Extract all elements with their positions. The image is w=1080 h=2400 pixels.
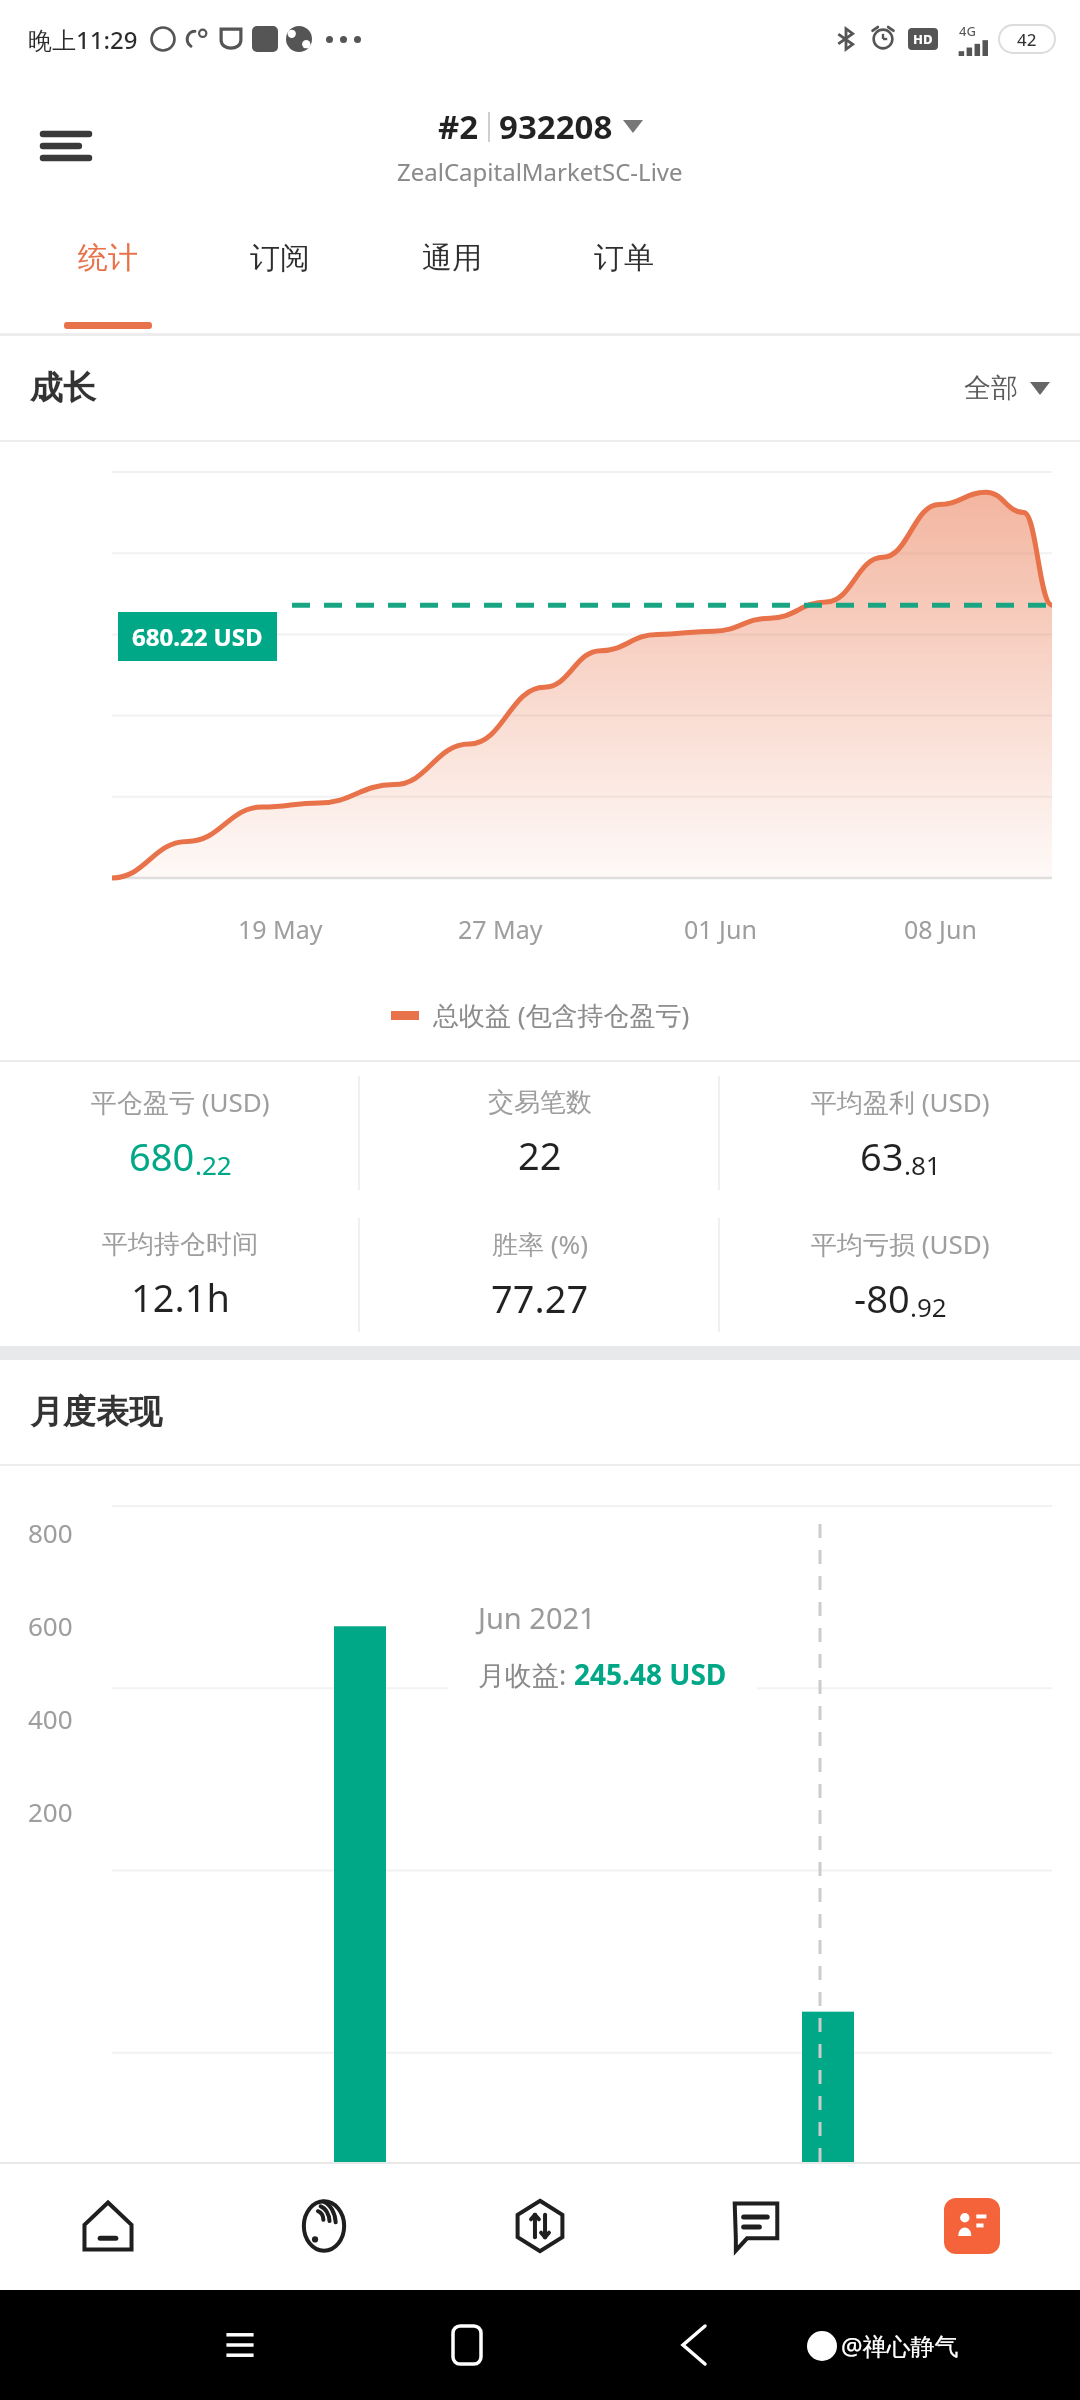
staticText: 680 <box>129 1130 195 1182</box>
staticText: 总收益 (包含持仓盈亏) <box>433 997 690 1033</box>
staticText: 12.1h <box>131 1271 230 1323</box>
staticText: 晚上11:29 <box>28 23 138 56</box>
staticText: 订阅 <box>250 239 310 277</box>
staticText: 27 May <box>458 912 543 946</box>
staticText: 800 <box>28 1515 73 1550</box>
button[interactable]: 订阅 <box>194 213 366 333</box>
staticText: 4G <box>959 22 976 40</box>
staticText: 通用 <box>422 239 482 277</box>
staticText: 订单 <box>594 239 654 277</box>
staticText: 22 <box>518 1129 562 1181</box>
button[interactable]: Menu <box>30 110 102 182</box>
staticText: 77.27 <box>491 1272 589 1324</box>
staticText: 08 Jun <box>904 912 977 946</box>
staticText: 200 <box>28 1794 73 1829</box>
staticText: ZealCapitalMarketSC-Live <box>397 155 683 188</box>
staticText: 全部 <box>964 371 1018 405</box>
staticText: 月收益: <box>478 1656 574 1693</box>
staticText: 245.48 USD <box>574 1655 727 1693</box>
button[interactable]: Home <box>353 2290 580 2400</box>
staticText: Jun 2021 <box>478 1598 596 1637</box>
staticText: 400 <box>28 1701 73 1736</box>
button[interactable]: 全部 <box>964 371 1050 405</box>
button[interactable]: Home <box>0 2162 216 2290</box>
button[interactable]: 订单 <box>538 213 710 333</box>
staticText: 交易笔数 <box>488 1086 592 1119</box>
button[interactable]: Messages <box>648 2162 864 2290</box>
staticText: .92 <box>910 1289 947 1324</box>
staticText: .22 <box>195 1147 232 1182</box>
staticText: 月度表现 <box>30 1391 162 1433</box>
staticText: 42 <box>1017 28 1037 51</box>
button[interactable]: #2 <box>397 104 683 188</box>
button[interactable]: 统计 <box>22 213 194 333</box>
staticText: 932208 <box>499 104 613 149</box>
staticText: 01 Jun <box>684 912 757 946</box>
button[interactable]: Profile <box>864 2162 1080 2290</box>
staticText: #2 <box>438 104 479 149</box>
staticText: -80 <box>854 1272 910 1324</box>
staticText: 成长 <box>30 367 96 409</box>
staticText: .81 <box>904 1147 941 1182</box>
staticText: 平均盈利 (USD) <box>811 1084 990 1120</box>
staticText: @禅心静气 <box>841 2329 959 2362</box>
button[interactable]: Trade <box>432 2162 648 2290</box>
staticText: 平仓盈亏 (USD) <box>91 1084 270 1120</box>
button[interactable]: Recents <box>126 2290 353 2400</box>
button[interactable]: Back <box>580 2290 807 2400</box>
button[interactable]: 通用 <box>366 213 538 333</box>
staticText: 平均持仓时间 <box>102 1228 258 1261</box>
staticText: 63 <box>860 1130 904 1182</box>
staticText: 680.22 USD <box>132 620 263 653</box>
staticText: 统计 <box>78 239 138 277</box>
staticText: 平均亏损 (USD) <box>811 1226 990 1262</box>
staticText: 600 <box>28 1608 73 1643</box>
staticText: 19 May <box>238 912 323 946</box>
button[interactable]: Signals <box>216 2162 432 2290</box>
staticText: HD <box>913 30 933 48</box>
staticText: 胜率 (%) <box>492 1226 588 1262</box>
